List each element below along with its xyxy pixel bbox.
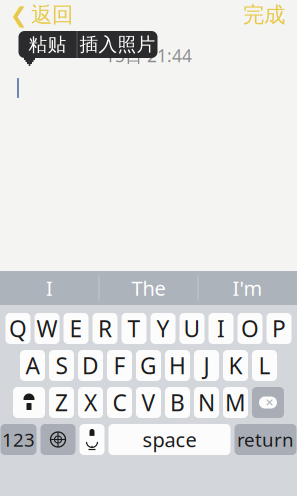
button[interactable]: T xyxy=(121,313,146,344)
staticText: 粘贴 xyxy=(28,33,66,56)
button[interactable]: N xyxy=(194,387,219,418)
staticText: space xyxy=(142,426,196,453)
button[interactable]: The xyxy=(99,271,197,305)
staticText: 完成 xyxy=(243,2,285,28)
staticText: P xyxy=(272,313,286,343)
button[interactable]: R xyxy=(92,313,117,344)
button[interactable]: P xyxy=(266,313,291,344)
staticText: R xyxy=(98,313,112,343)
staticText: N xyxy=(198,387,215,417)
staticText: E xyxy=(69,313,82,343)
staticText: I xyxy=(217,313,225,343)
staticText: J xyxy=(203,350,209,380)
button[interactable]: G xyxy=(136,350,161,381)
button[interactable]: Q xyxy=(5,313,30,344)
button[interactable]: A xyxy=(20,350,45,381)
staticText: V xyxy=(141,387,155,417)
staticText: ✕ xyxy=(265,396,274,408)
staticText: F xyxy=(113,350,125,380)
staticText: 返回 xyxy=(31,2,73,28)
button[interactable]: Numbers xyxy=(0,424,36,455)
button[interactable]: K xyxy=(223,350,248,381)
button[interactable]: Dictate xyxy=(79,424,104,455)
button[interactable]: U xyxy=(179,313,204,344)
button[interactable]: ❮ xyxy=(0,0,73,34)
staticText: The xyxy=(131,275,165,301)
button[interactable]: V xyxy=(136,387,161,418)
button[interactable]: Next keyboard xyxy=(40,424,75,455)
staticText: T xyxy=(127,313,140,343)
button[interactable]: F xyxy=(107,350,132,381)
button[interactable]: 粘贴 xyxy=(18,31,76,58)
button[interactable]: D xyxy=(78,350,103,381)
button[interactable]: M xyxy=(223,387,248,418)
staticText: L xyxy=(258,350,270,380)
button[interactable]: W xyxy=(34,313,59,344)
staticText: Y xyxy=(156,313,169,343)
button[interactable]: 完成 xyxy=(243,0,297,34)
staticText: S xyxy=(55,350,67,380)
staticText: U xyxy=(183,313,200,343)
staticText: M xyxy=(225,387,246,417)
staticText: return xyxy=(237,427,294,452)
button[interactable]: I xyxy=(208,313,233,344)
staticText: X xyxy=(84,387,97,417)
button[interactable]: Delete xyxy=(252,387,284,418)
staticText: 123 xyxy=(2,427,35,452)
staticText: I'm xyxy=(232,275,262,301)
staticText: Q xyxy=(9,313,27,343)
staticText: H xyxy=(169,350,186,380)
staticText: K xyxy=(228,350,242,380)
button[interactable]: X xyxy=(78,387,103,418)
button[interactable]: I'm xyxy=(198,271,296,305)
staticText: G xyxy=(140,350,157,380)
button[interactable]: O xyxy=(237,313,262,344)
button[interactable]: S xyxy=(49,350,74,381)
staticText: ❮ xyxy=(10,3,28,27)
button[interactable]: Y xyxy=(150,313,175,344)
button[interactable]: space xyxy=(108,424,230,455)
staticText: I xyxy=(46,275,53,301)
button[interactable]: J xyxy=(194,350,219,381)
button[interactable]: L xyxy=(252,350,277,381)
staticText: 15日 21:44 xyxy=(105,44,192,67)
button[interactable]: C xyxy=(107,387,132,418)
button[interactable]: Shift xyxy=(13,387,45,418)
button[interactable]: return xyxy=(234,424,296,455)
staticText: C xyxy=(112,387,126,417)
staticText: Z xyxy=(55,387,68,417)
staticText: O xyxy=(241,313,259,343)
staticText: W xyxy=(36,313,57,343)
staticText: D xyxy=(82,350,99,380)
button[interactable]: I xyxy=(0,271,98,305)
button[interactable]: E xyxy=(63,313,88,344)
button[interactable]: 插入照片 xyxy=(77,31,157,58)
button[interactable]: B xyxy=(165,387,190,418)
staticText: B xyxy=(170,387,185,417)
button[interactable]: Z xyxy=(49,387,74,418)
staticText: A xyxy=(25,350,39,380)
button[interactable]: H xyxy=(165,350,190,381)
staticText: 插入照片 xyxy=(79,33,155,56)
